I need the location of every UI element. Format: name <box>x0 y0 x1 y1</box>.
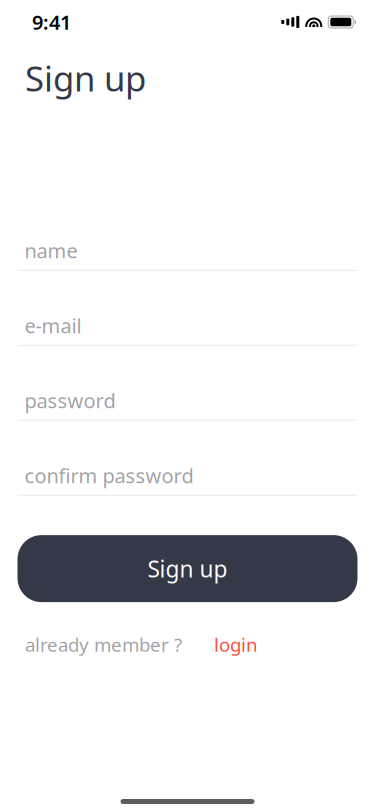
staticText: confirm password <box>24 462 193 489</box>
staticText: name <box>24 237 77 264</box>
staticText: Sign up <box>25 55 146 101</box>
staticText: Sign up <box>147 554 227 584</box>
staticText: 9:41 <box>32 9 71 35</box>
staticText: login <box>214 632 258 657</box>
button[interactable]: Sign up <box>17 535 357 602</box>
staticText: e-mail <box>24 312 81 339</box>
button[interactable]: password <box>17 387 357 421</box>
staticText: password <box>24 387 115 414</box>
staticText: already member ? <box>25 632 182 657</box>
button[interactable]: login <box>202 626 270 663</box>
button[interactable]: e-mail <box>17 312 357 346</box>
button[interactable]: confirm password <box>17 462 357 496</box>
button[interactable]: name <box>17 237 357 271</box>
